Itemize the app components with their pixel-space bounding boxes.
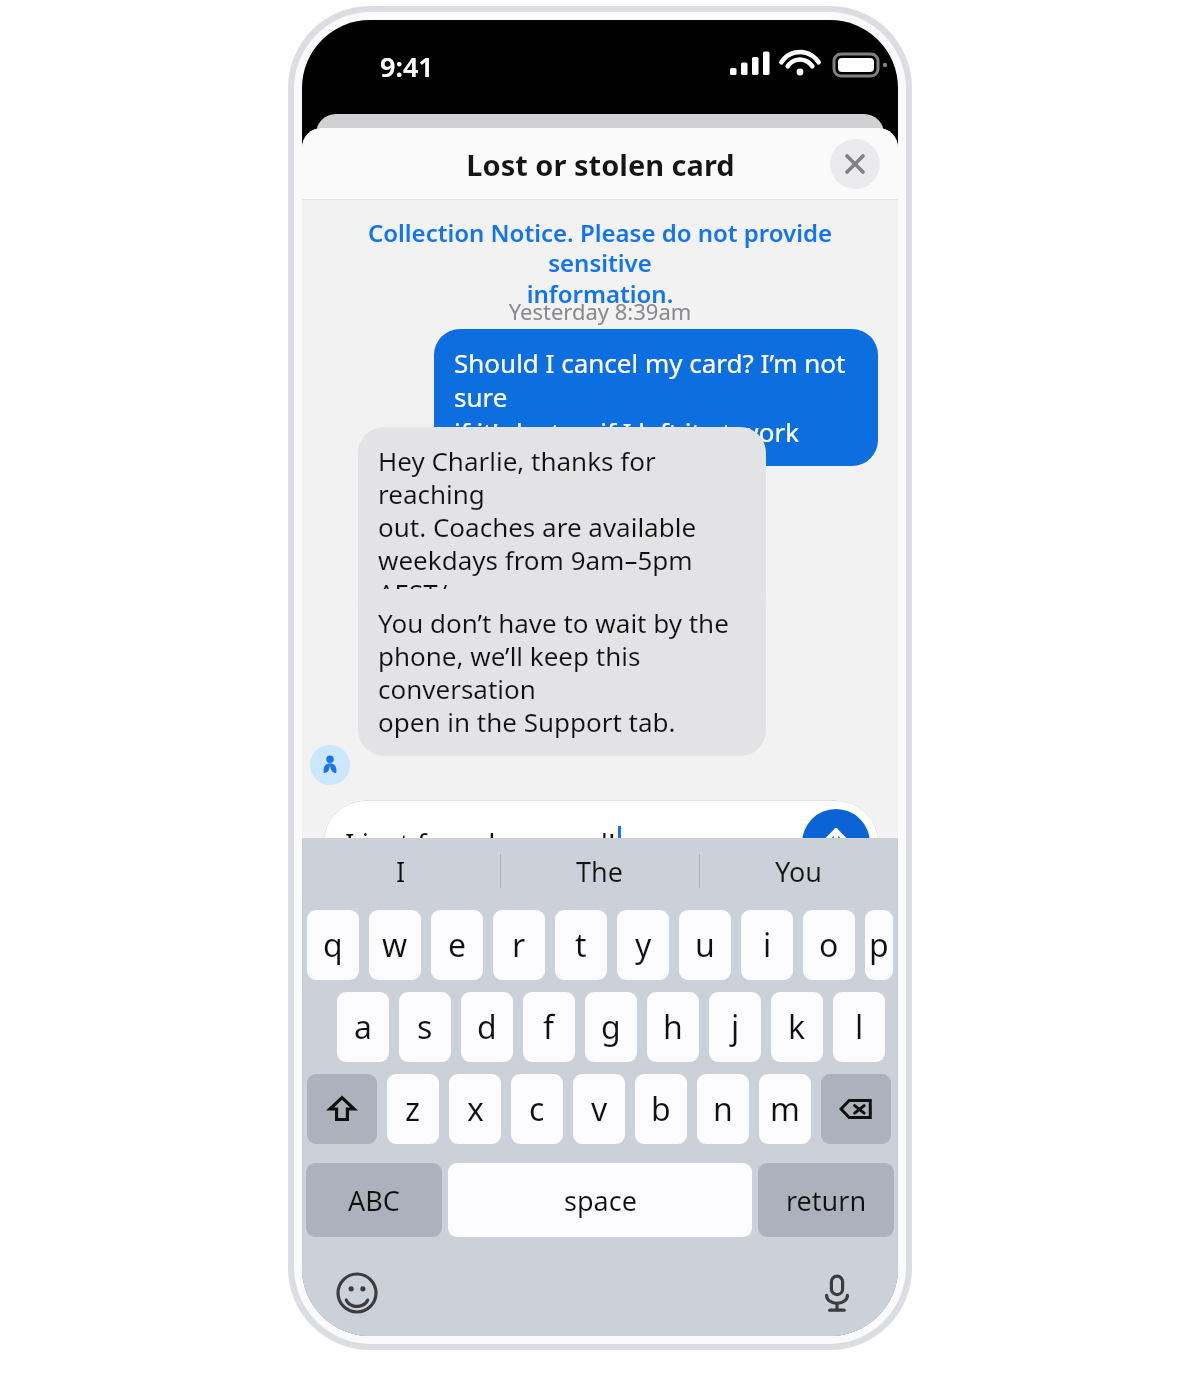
staticText: r [512, 923, 526, 967]
button[interactable]: return [758, 1163, 894, 1237]
button[interactable]: s [399, 992, 451, 1062]
staticText: g [601, 1005, 621, 1049]
button[interactable]: f [523, 992, 575, 1062]
button[interactable]: o [803, 910, 855, 980]
button[interactable]: ABC [306, 1163, 442, 1237]
button[interactable]: g [585, 992, 637, 1062]
staticText: return [786, 1182, 867, 1219]
staticText: y [635, 923, 652, 967]
button[interactable]: c [511, 1074, 563, 1144]
button[interactable]: a [337, 992, 389, 1062]
staticText: q [323, 923, 343, 967]
staticText: b [651, 1087, 671, 1131]
staticText: I [396, 853, 406, 890]
button[interactable]: w [369, 910, 421, 980]
button[interactable]: d [461, 992, 513, 1062]
button[interactable]: k [771, 992, 823, 1062]
button[interactable]: p [865, 910, 893, 980]
staticText: Should I cancel my card? I’m not sure if… [454, 345, 858, 450]
button[interactable]: space [448, 1163, 752, 1237]
button[interactable]: Dictate [810, 1266, 864, 1320]
button[interactable]: I just found my card! [323, 800, 879, 886]
button[interactable]: t [555, 910, 607, 980]
button[interactable]: j [709, 992, 761, 1062]
staticText: Lost or stolen card [466, 145, 735, 184]
staticText: o [819, 923, 839, 967]
button[interactable]: e [431, 910, 483, 980]
button[interactable]: q [307, 910, 359, 980]
button[interactable]: Hey Charlie, thanks for reaching out. Co… [358, 427, 766, 660]
button[interactable]: Shift [307, 1074, 377, 1144]
staticText: l [855, 1005, 864, 1049]
staticText: v [591, 1087, 608, 1131]
button[interactable]: Send [802, 809, 870, 877]
staticText: I just found my card! [345, 824, 616, 862]
staticText: n [713, 1087, 733, 1131]
staticText: c [529, 1087, 545, 1131]
button[interactable]: l [833, 992, 885, 1062]
button[interactable]: Backspace [821, 1074, 891, 1144]
button[interactable]: You don’t have to wait by the phone, we’… [358, 589, 766, 756]
staticText: 9:41 [380, 48, 434, 85]
button[interactable]: I [302, 838, 500, 904]
button[interactable]: x [449, 1074, 501, 1144]
button[interactable]: m [759, 1074, 811, 1144]
staticText: j [731, 1005, 740, 1049]
staticText: Collection Notice. Please do not provide… [338, 216, 862, 310]
staticText: You don’t have to wait by the phone, we’… [378, 605, 746, 740]
staticText: s [417, 1005, 433, 1049]
staticText: Yesterday 8:39am [302, 296, 898, 326]
button[interactable]: You [699, 838, 898, 904]
staticText: a [354, 1005, 372, 1049]
button[interactable]: Close [830, 139, 880, 189]
staticText: e [448, 923, 467, 967]
button[interactable]: v [573, 1074, 625, 1144]
staticText: d [477, 1005, 497, 1049]
button[interactable]: y [617, 910, 669, 980]
button[interactable]: Should I cancel my card? I’m not sure if… [434, 329, 878, 466]
staticText: The [576, 853, 623, 890]
staticText: space [564, 1182, 637, 1219]
staticText: t [575, 923, 587, 967]
staticText: p [869, 923, 889, 967]
staticText: x [467, 1087, 484, 1131]
staticText: h [663, 1005, 683, 1049]
staticText: You [775, 853, 822, 890]
staticText: ABC [348, 1182, 400, 1219]
staticText: u [695, 923, 715, 967]
staticText: f [543, 1005, 555, 1049]
button[interactable]: r [493, 910, 545, 980]
staticText: w [382, 923, 408, 967]
button[interactable]: h [647, 992, 699, 1062]
button[interactable]: z [387, 1074, 439, 1144]
staticText: m [770, 1087, 800, 1131]
button[interactable]: b [635, 1074, 687, 1144]
staticText: k [788, 1005, 806, 1049]
staticText: i [763, 923, 772, 967]
button[interactable]: The [500, 838, 699, 904]
button[interactable]: i [741, 910, 793, 980]
staticText: z [405, 1087, 421, 1131]
staticText: Hey Charlie, thanks for reaching out. Co… [378, 443, 746, 644]
button[interactable]: u [679, 910, 731, 980]
button[interactable]: n [697, 1074, 749, 1144]
button[interactable]: Emoji [330, 1266, 384, 1320]
